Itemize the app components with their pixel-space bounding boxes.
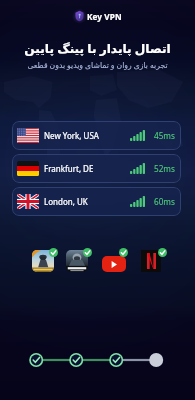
button[interactable]: Call of Duty — [66, 250, 88, 272]
staticText: 60ms — [154, 196, 175, 207]
button[interactable]: PUBG Mobile — [32, 250, 54, 272]
staticText: تجربه بازی روان و تماشای ویدیو بدون قطعی — [0, 60, 195, 70]
staticText: New York, USA — [44, 130, 99, 141]
staticText: Key VPN — [87, 11, 122, 22]
button[interactable]: Key VPN — [0, 9, 195, 23]
button[interactable]: London, UK — [12, 187, 181, 216]
button[interactable]: Netflix — [141, 250, 161, 272]
staticText: London, UK — [44, 196, 88, 207]
staticText: 45ms — [154, 130, 175, 141]
button[interactable]: New York, USA — [12, 121, 181, 150]
staticText: 52ms — [154, 163, 175, 174]
button[interactable]: Frankfurt, DE — [12, 154, 181, 183]
button[interactable]: YouTube — [102, 256, 126, 272]
staticText: Frankfurt, DE — [44, 163, 94, 174]
staticText: اتصال پایدار با پینگ پایین — [0, 40, 195, 57]
